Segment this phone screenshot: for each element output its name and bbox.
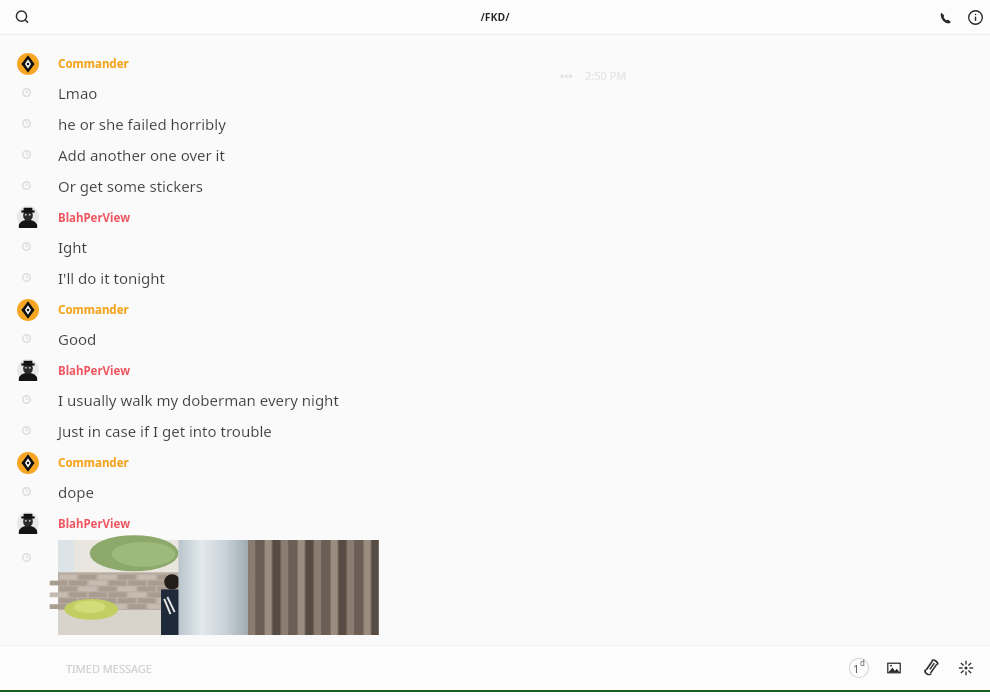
button[interactable]: Commander avatar	[17, 53, 39, 69]
button[interactable]: Commander avatar	[17, 299, 39, 315]
staticText: Good	[58, 329, 97, 349]
staticText: BlahPerView	[58, 363, 130, 379]
button[interactable]: Or get some stickers	[0, 170, 990, 201]
staticText: •••	[560, 68, 573, 83]
button[interactable]: Send image	[876, 650, 912, 686]
button[interactable]: Attach file	[912, 650, 948, 686]
staticText: 1	[853, 661, 860, 676]
staticText: Ight	[58, 237, 87, 257]
staticText: I usually walk my doberman every night	[58, 390, 339, 410]
button[interactable]: BlahPerView avatar	[17, 512, 39, 528]
staticText: Commander	[58, 56, 129, 72]
button[interactable]: Message timer 1 day	[842, 651, 876, 685]
button[interactable]: Just in case if I get into trouble	[0, 415, 990, 446]
staticText: d	[860, 657, 865, 668]
staticText: he or she failed horribly	[58, 114, 226, 134]
staticText: Lmao	[58, 83, 98, 103]
button[interactable]: TIMED MESSAGE	[66, 661, 152, 676]
button[interactable]: BlahPerView avatar	[17, 206, 39, 222]
staticText: BlahPerView	[58, 210, 130, 226]
button[interactable]: Search	[8, 3, 36, 31]
staticText: BlahPerView	[58, 516, 130, 532]
staticText: /FKD/	[480, 10, 510, 24]
button[interactable]: BlahPerView avatar	[17, 359, 39, 375]
button[interactable]: Photo attachment	[58, 540, 375, 635]
staticText: Just in case if I get into trouble	[58, 421, 272, 441]
staticText: Commander	[58, 455, 129, 471]
button[interactable]: he or she failed horribly	[0, 108, 990, 139]
button[interactable]: Lmao	[0, 77, 990, 108]
button[interactable]: dope	[0, 476, 990, 507]
button[interactable]: Add another one over it	[0, 139, 990, 170]
button[interactable]: I usually walk my doberman every night	[0, 384, 990, 415]
button[interactable]: Call	[930, 2, 960, 32]
button[interactable]: Info	[960, 2, 990, 32]
staticText: Commander	[58, 302, 129, 318]
button[interactable]: Good	[0, 323, 990, 354]
button[interactable]: Ight	[0, 231, 990, 262]
staticText: dope	[58, 482, 94, 502]
staticText: 2:50 PM	[585, 68, 627, 83]
button[interactable]: Commander avatar	[17, 452, 39, 468]
staticText: Or get some stickers	[58, 176, 203, 196]
button[interactable]: Effects	[948, 650, 984, 686]
staticText: Add another one over it	[58, 145, 225, 165]
staticText: I'll do it tonight	[58, 268, 166, 288]
button[interactable]: I'll do it tonight	[0, 262, 990, 293]
